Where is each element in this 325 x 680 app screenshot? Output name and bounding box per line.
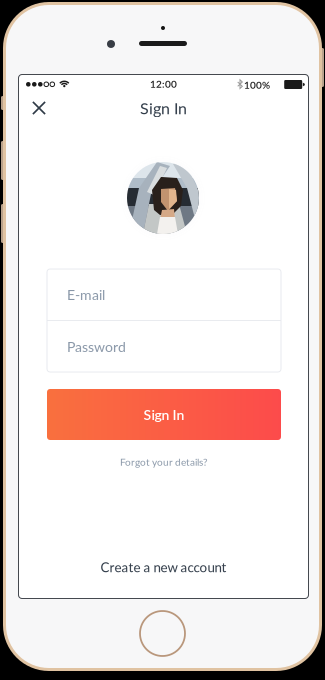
staticText: E-mail xyxy=(67,286,105,303)
button[interactable]: Sign In xyxy=(47,389,281,440)
button[interactable]: Forgot your details? xyxy=(19,454,308,470)
button[interactable]: E-mail xyxy=(47,269,281,320)
staticText: 100% xyxy=(244,79,270,91)
staticText: 12:00 xyxy=(150,78,177,90)
staticText: Sign In xyxy=(140,98,187,118)
staticText: Sign In xyxy=(143,406,184,423)
staticText: Create a new account xyxy=(100,559,226,575)
staticText: Password xyxy=(67,338,126,355)
button[interactable]: Create a new account xyxy=(19,556,308,578)
button[interactable]: Close xyxy=(19,93,59,123)
staticText: Forgot your details? xyxy=(120,456,207,468)
button[interactable]: Password xyxy=(47,321,281,372)
